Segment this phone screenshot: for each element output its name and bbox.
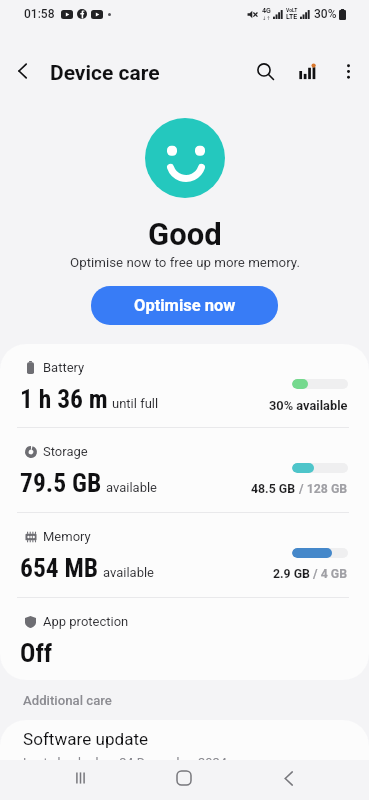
staticText: / 4 GB <box>310 567 348 581</box>
button[interactable]: Back <box>236 760 340 796</box>
staticText: LTE <box>286 13 298 21</box>
staticText: 654 MB <box>20 553 99 583</box>
button[interactable]: Search <box>243 49 287 93</box>
staticText: / 128 GB <box>296 482 348 496</box>
staticText: Off <box>20 638 53 668</box>
button[interactable]: Navigate up <box>0 48 46 94</box>
button[interactable]: Storage <box>0 428 369 512</box>
staticText: 79.5 GB <box>20 468 102 498</box>
staticText: ↓↑ <box>262 15 271 21</box>
staticText: available <box>106 480 157 495</box>
staticText: available <box>103 565 154 580</box>
button[interactable]: Optimise now <box>91 286 278 325</box>
staticText: Software update <box>23 729 149 749</box>
staticText: Battery <box>43 360 85 375</box>
button[interactable]: App protection <box>0 598 369 680</box>
staticText: Additional care <box>23 693 112 708</box>
button[interactable]: Home <box>132 760 236 796</box>
staticText: Storage <box>43 444 88 459</box>
staticText: Optimise now <box>134 296 236 315</box>
staticText: Memory <box>43 529 91 544</box>
staticText: 1 h 36 m <box>20 384 108 414</box>
button[interactable]: Recent apps <box>29 760 132 796</box>
button[interactable]: Usage statistics <box>287 51 327 91</box>
staticText: until full <box>112 396 159 411</box>
staticText: 4G <box>262 7 271 15</box>
button[interactable]: More options <box>327 50 369 92</box>
staticText: 2.9 GB <box>273 567 310 581</box>
staticText: 30% <box>314 7 337 21</box>
staticText: VoLT <box>286 7 298 13</box>
staticText: 01:58 <box>24 7 55 21</box>
staticText: 30% available <box>269 398 348 413</box>
button[interactable]: Battery <box>0 344 369 427</box>
staticText: Device care <box>50 61 160 86</box>
staticText: 48.5 GB <box>251 482 296 496</box>
staticText: Good <box>148 216 222 252</box>
button[interactable]: Memory <box>0 513 369 597</box>
staticText: Last checked on 24 December 2024 <box>23 755 227 765</box>
button[interactable]: Software update <box>0 720 369 765</box>
staticText: App protection <box>43 614 129 629</box>
staticText: Optimise now to free up more memory. <box>70 255 300 271</box>
